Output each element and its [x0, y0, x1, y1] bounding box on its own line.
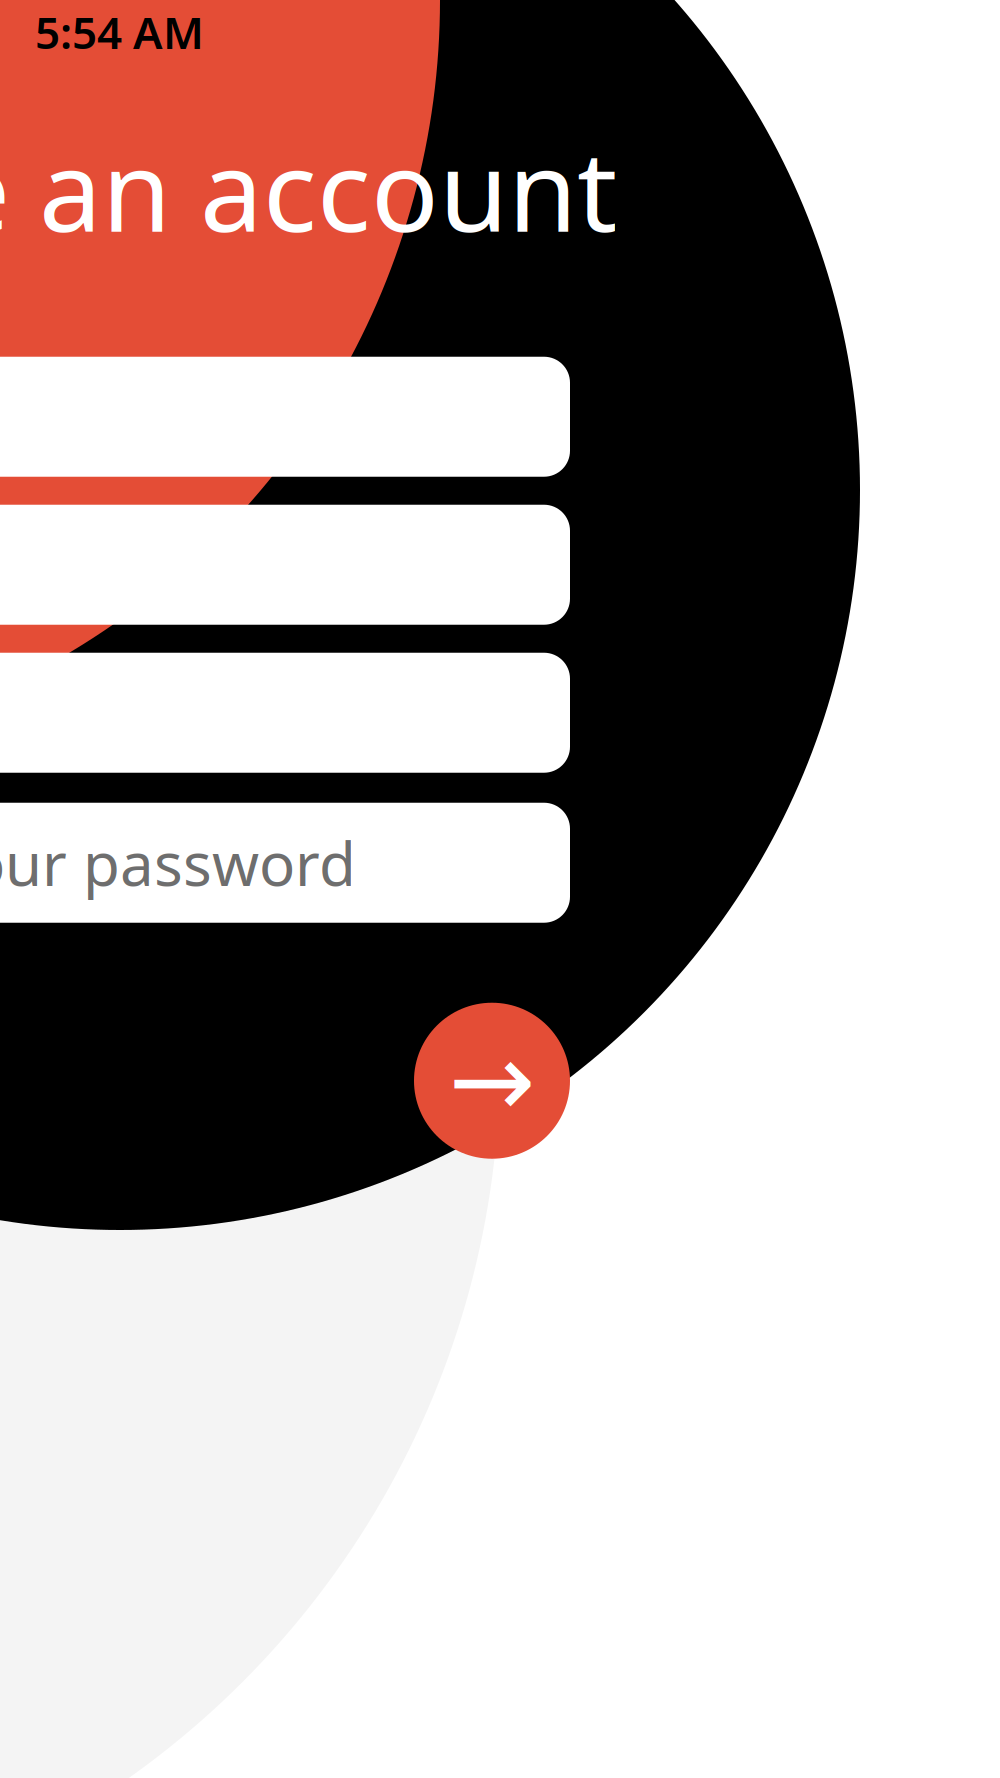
button[interactable]: Confirm your password	[0, 803, 570, 923]
staticText: →	[448, 1022, 535, 1140]
staticText: 5:54 AM	[35, 3, 204, 61]
button[interactable]: Your Email	[0, 505, 570, 625]
button[interactable]: Password	[0, 653, 570, 773]
staticText: Create an account	[0, 114, 617, 263]
button[interactable]: Continue to sign up	[414, 1003, 570, 1159]
button[interactable]: Name	[0, 357, 570, 477]
staticText: Confirm your password	[0, 823, 356, 903]
